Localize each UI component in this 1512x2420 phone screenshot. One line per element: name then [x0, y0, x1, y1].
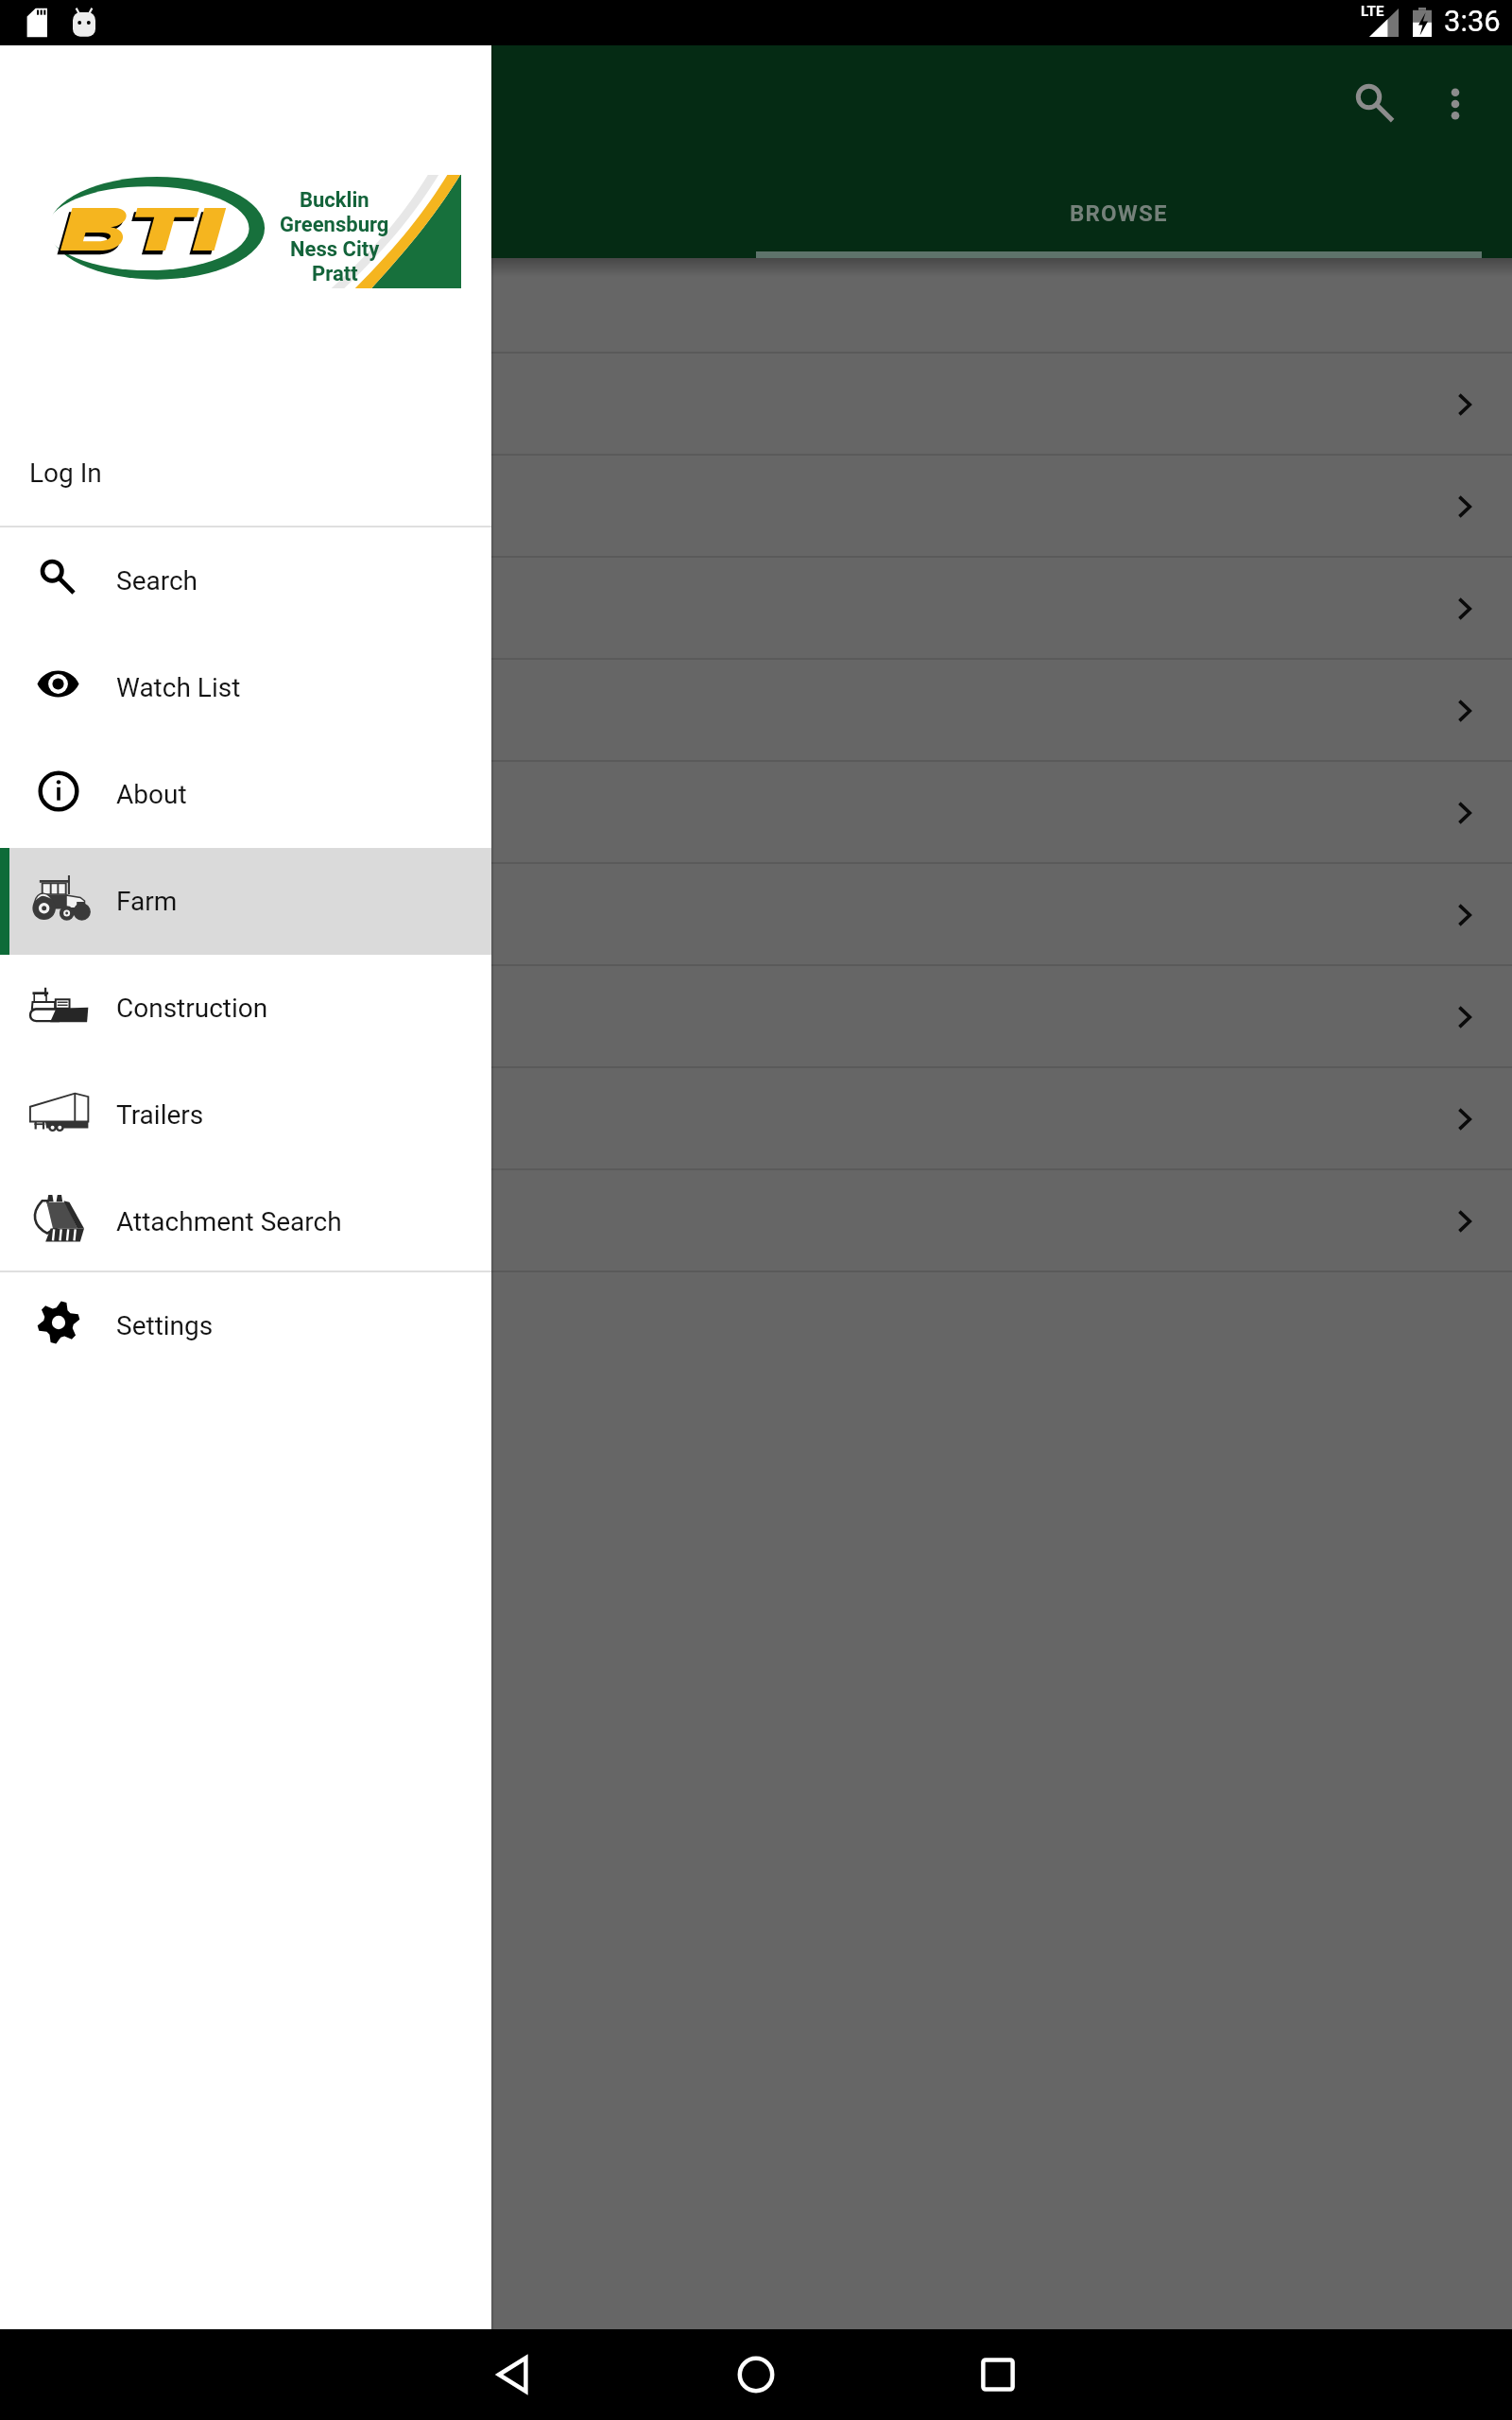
button[interactable]: More options [1406, 55, 1504, 153]
staticText: LTE [1361, 3, 1384, 20]
staticText: Greensburg [280, 213, 389, 237]
staticText: Watch List [116, 672, 241, 703]
staticText: Farm [116, 886, 178, 917]
button[interactable]: Back [469, 2329, 559, 2420]
button[interactable]: Category 2 [0, 456, 1512, 558]
button[interactable]: Trailers [0, 1062, 491, 1168]
staticText: Ness City [290, 237, 380, 262]
staticText: About [116, 779, 187, 810]
staticText: BROWSE [1070, 200, 1168, 227]
staticText: Pratt [312, 262, 358, 286]
button[interactable]: Attachment Search [0, 1168, 491, 1275]
button[interactable]: Construction [0, 955, 491, 1062]
staticText: Search [116, 565, 198, 596]
staticText: Trailers [116, 1099, 204, 1131]
button[interactable]: Log In [0, 420, 491, 527]
staticText: Attachment Search [116, 1206, 342, 1237]
button[interactable]: SELL [30, 172, 756, 255]
button[interactable]: Recents [953, 2329, 1043, 2420]
button[interactable]: About [0, 741, 491, 848]
button[interactable]: Settings [0, 1272, 491, 1379]
button[interactable]: Farm [0, 848, 491, 955]
staticText: 3:36 [1444, 4, 1501, 38]
button[interactable]: Category 1 [0, 354, 1512, 456]
button[interactable]: Home [711, 2329, 801, 2420]
button[interactable]: BROWSE [756, 172, 1482, 255]
button[interactable]: Category 7 [0, 966, 1512, 1068]
staticText: Construction [116, 993, 268, 1024]
button[interactable]: Category 3 [0, 558, 1512, 660]
button[interactable]: Category 9 [0, 1170, 1512, 1272]
staticText: Bucklin [300, 188, 369, 213]
button[interactable]: Category 6 [0, 864, 1512, 966]
button[interactable]: Search [0, 527, 491, 634]
button[interactable]: Category 8 [0, 1068, 1512, 1170]
staticText: Log In [29, 458, 102, 489]
button[interactable]: Search [1327, 55, 1425, 153]
staticText: SELL [365, 200, 421, 227]
button[interactable]: Category header [0, 251, 1512, 354]
staticText: Settings [116, 1310, 214, 1341]
button[interactable]: Category 4 [0, 660, 1512, 762]
button[interactable]: Watch List [0, 634, 491, 741]
button[interactable]: Category 5 [0, 762, 1512, 864]
